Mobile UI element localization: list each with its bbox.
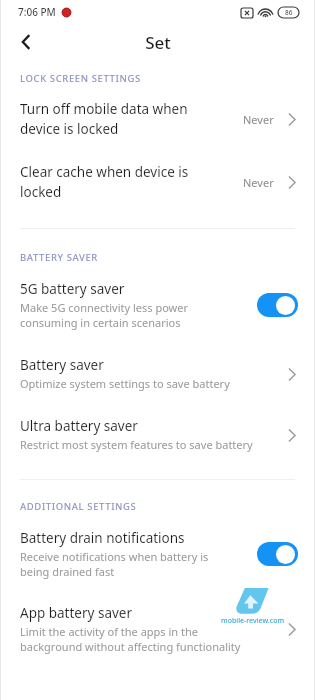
button[interactable]: Open [283, 618, 301, 640]
staticText: Never [243, 112, 274, 127]
button[interactable]: Turn off mobile data when device is lock… [0, 98, 315, 140]
staticText: 5G battery saver [20, 280, 125, 298]
staticText: Optimize system settings to save battery [20, 376, 230, 391]
staticText: BATTERY SAVER [20, 251, 98, 264]
staticText: Restrict most system features to save ba… [20, 437, 253, 452]
staticText: Battery saver [20, 356, 104, 374]
staticText: Receive notifications when battery is be… [20, 549, 209, 579]
staticText: ADDITIONAL SETTINGS [20, 500, 137, 513]
button[interactable]: Open [283, 108, 301, 130]
button[interactable]: Ultra battery saver [0, 415, 315, 454]
staticText: Never [243, 175, 274, 190]
button[interactable]: Open [283, 424, 301, 446]
staticText: Clear cache when device is locked [20, 163, 243, 201]
button[interactable]: Open [283, 363, 301, 385]
staticText: 7:06 PM [18, 5, 56, 19]
staticText: Limit the activity of the apps in the ba… [20, 624, 241, 654]
button[interactable]: Toggle on [257, 542, 298, 566]
button[interactable]: Battery saver [0, 354, 315, 393]
staticText: mobile-review.com [221, 616, 285, 626]
staticText: Ultra battery saver [20, 417, 138, 435]
button[interactable]: Toggle on [257, 293, 298, 317]
button[interactable]: Back [8, 24, 44, 60]
button[interactable]: 5G battery saver [0, 278, 315, 332]
staticText: App battery saver [20, 604, 133, 622]
staticText: Set [145, 31, 171, 54]
staticText: 86 [285, 8, 293, 17]
button[interactable]: App battery saver [0, 602, 315, 656]
button[interactable]: Open [283, 171, 301, 193]
staticText: Make 5G connectivity less power consumin… [20, 300, 188, 330]
staticText: LOCK SCREEN SETTINGS [20, 72, 141, 85]
staticText: Battery drain notifications [20, 529, 185, 547]
button[interactable]: Battery drain notifications [0, 527, 315, 581]
staticText: Turn off mobile data when device is lock… [20, 100, 243, 138]
button[interactable]: Clear cache when device is locked [0, 161, 315, 203]
